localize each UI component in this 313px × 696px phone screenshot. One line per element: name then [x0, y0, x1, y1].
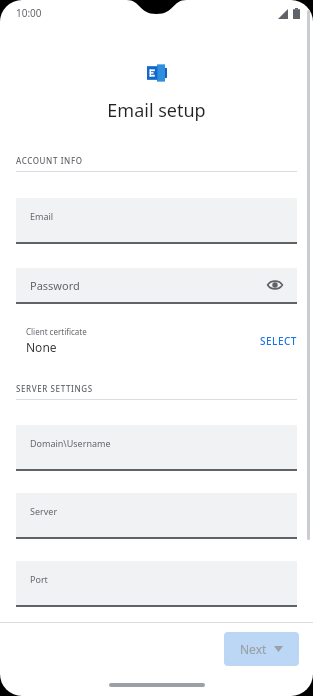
staticText: SERVER SETTINGS [16, 383, 93, 394]
button[interactable]: Server [16, 493, 297, 539]
staticText: Email [30, 210, 54, 222]
button[interactable]: Password [16, 268, 297, 304]
staticText: 10:00 [16, 6, 42, 20]
staticText: Password [30, 278, 80, 293]
button[interactable]: Email [16, 198, 297, 244]
staticText: Email setup [0, 98, 313, 123]
staticText: Next [240, 641, 267, 657]
button[interactable]: Show password [263, 273, 287, 297]
staticText: ACCOUNT INFO [16, 155, 83, 166]
staticText: Server [30, 505, 58, 517]
button[interactable]: Port [16, 561, 297, 607]
staticText: SELECT [260, 334, 297, 348]
staticText: Client certificate [26, 326, 87, 337]
staticText: None [26, 339, 57, 355]
button[interactable]: Client certificate [0, 326, 313, 355]
staticText: Port [30, 573, 48, 585]
button[interactable]: Domain\Username [16, 425, 297, 471]
button[interactable]: Next [224, 632, 299, 666]
staticText: Domain\Username [30, 437, 111, 449]
